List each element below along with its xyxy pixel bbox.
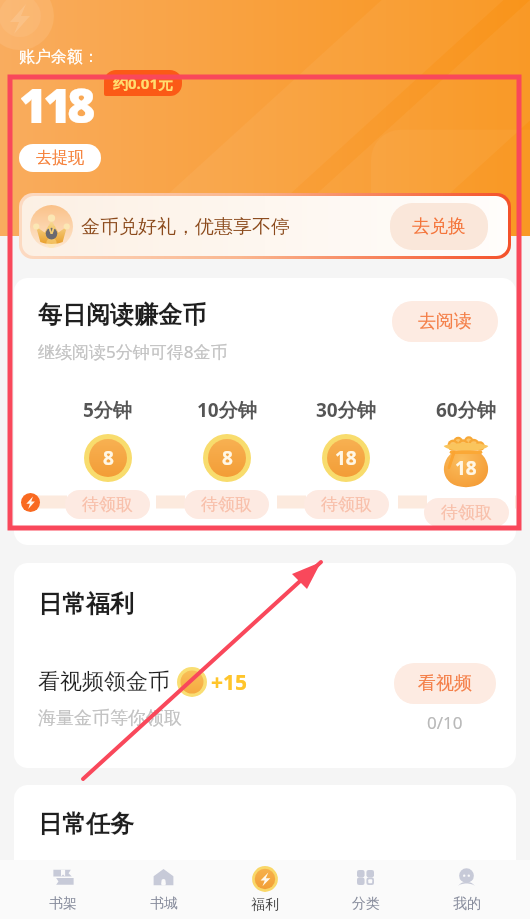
staticText: 继续阅读5分钟可得8金币 [38,340,228,363]
button[interactable]: 我的 [416,860,517,919]
staticText: 日常福利 [38,589,134,619]
other: 奖励进度 [21,493,40,512]
staticText: 书城 [150,895,178,913]
staticText: 福利 [251,896,279,914]
staticText: 我的 [453,895,481,913]
staticText: 待领取 [82,494,133,515]
staticText: 海量金币等你领取 [38,707,182,730]
staticText: 待领取 [441,502,492,523]
staticText: 60分钟 [436,397,496,423]
staticText: 日常任务 [38,809,134,839]
button[interactable]: 去阅读 [392,301,498,342]
staticText: 金币兑好礼，优惠享不停 [81,215,290,239]
staticText: 0/10 [427,711,463,734]
staticText: 书架 [49,895,77,913]
staticText: +15 [211,668,248,697]
button[interactable]: 分类 [315,860,416,919]
staticText: 每日阅读赚金币 [38,300,206,330]
staticText: 去提现 [36,148,84,168]
button[interactable]: 书城 [113,860,214,919]
staticText: 看视频 [418,672,472,695]
staticText: 30分钟 [316,397,376,423]
button[interactable]: V [22,196,508,256]
button[interactable]: 约0.01元 [104,70,182,96]
button[interactable]: 待领取 [424,498,509,527]
staticText: 去阅读 [418,310,472,333]
staticText: 待领取 [321,494,372,515]
staticText: 看视频领金币 [38,668,170,696]
staticText: 分类 [352,895,380,913]
button[interactable]: 待领取 [184,490,269,519]
staticText: 5分钟 [83,397,132,423]
staticText: 约0.01元 [113,73,173,93]
staticText: 118 [19,72,92,137]
staticText: 8 [103,445,114,471]
button[interactable]: 福利 [214,860,315,919]
staticText: 去兑换 [412,215,466,238]
button[interactable]: 书架 [13,860,113,919]
staticText: 18 [335,445,357,471]
staticText: 账户余额： [19,47,99,67]
button[interactable]: 待领取 [304,490,389,519]
button[interactable]: 去兑换 [390,203,488,250]
staticText: 待领取 [201,494,252,515]
button[interactable]: 去提现 [19,144,101,172]
button[interactable]: 看视频 [394,663,496,704]
staticText: 10分钟 [197,397,257,423]
staticText: 8 [222,445,233,471]
button[interactable]: 待领取 [65,490,150,519]
staticText: V [48,222,56,237]
staticText: 18 [455,455,477,481]
